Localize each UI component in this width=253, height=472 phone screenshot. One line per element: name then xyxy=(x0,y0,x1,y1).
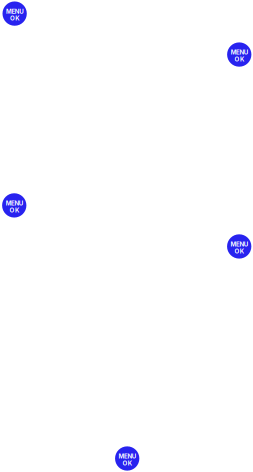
staticText: OK xyxy=(234,247,244,255)
staticText: OK xyxy=(122,460,132,467)
staticText: OK xyxy=(235,56,244,63)
staticText: OK xyxy=(10,15,19,22)
staticText: MENU xyxy=(6,199,23,207)
button[interactable]: MENU OK xyxy=(115,446,139,471)
staticText: MENU xyxy=(231,241,248,248)
button[interactable]: MENU OK xyxy=(2,1,27,26)
staticText: OK xyxy=(10,206,19,214)
button[interactable]: MENU OK xyxy=(2,193,26,217)
staticText: MENU xyxy=(6,8,23,15)
staticText: MENU xyxy=(119,453,136,460)
button[interactable]: MENU OK xyxy=(227,42,251,67)
staticText: MENU xyxy=(231,49,248,56)
button[interactable]: MENU OK xyxy=(227,234,251,259)
